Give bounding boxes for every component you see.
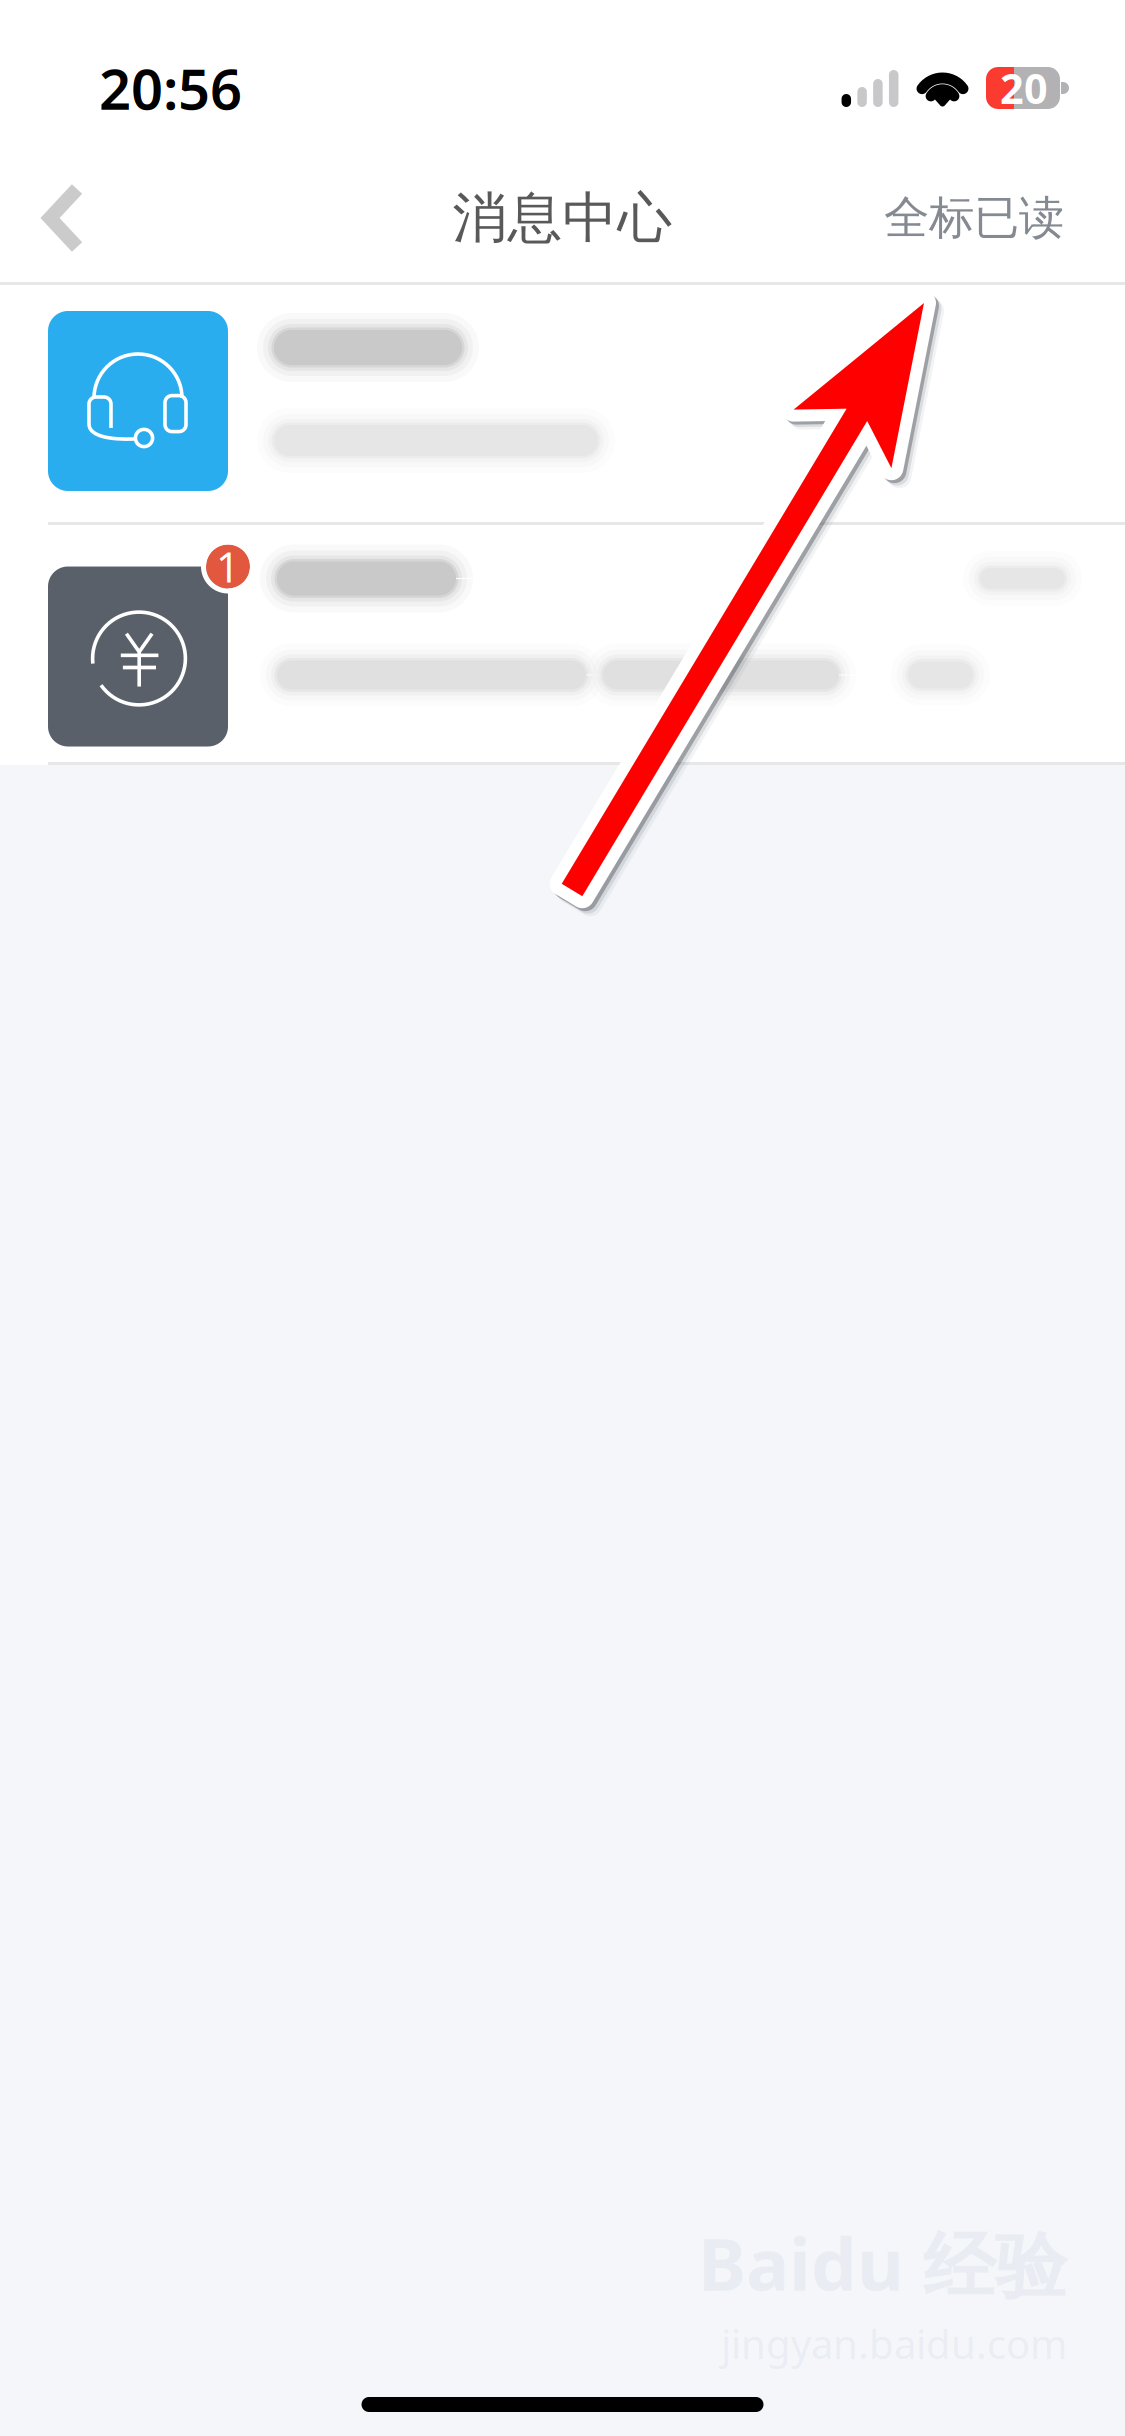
button[interactable]: 全标已读 [844,154,1125,282]
staticText: 20:56 [99,51,242,125]
button[interactable]: 1 [0,525,1125,762]
button[interactable]: Back [0,154,116,282]
staticText: 20 [1000,61,1048,115]
staticText: Baidu 经验 [698,2215,1067,2311]
staticText: 全标已读 [884,190,1064,246]
button[interactable] [0,285,1125,522]
staticText: 1 [216,539,240,594]
staticText: 消息中心 [452,184,672,251]
staticText: jingyan.baidu.com [721,2317,1067,2370]
